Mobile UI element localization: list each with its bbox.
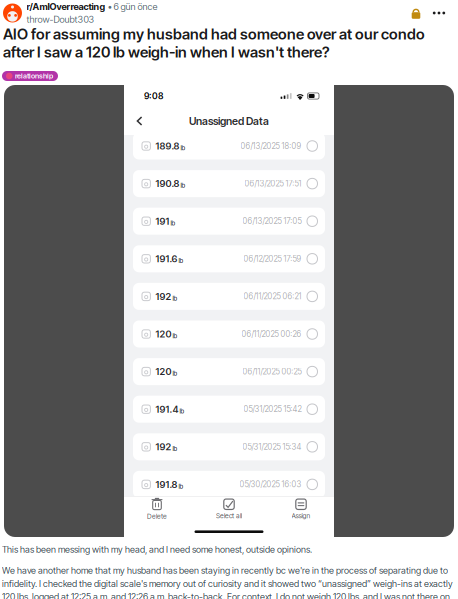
staticText: Assign [291, 512, 310, 520]
staticText: 06/13/2025 18:09 [240, 141, 301, 151]
staticText: We have another home that my husband has… [2, 565, 453, 599]
staticText: 05/30/2025 16:03 [239, 480, 301, 489]
staticText: 191.8 [155, 479, 177, 490]
staticText: lb [172, 294, 177, 302]
staticText: 190.8 [155, 178, 179, 189]
staticText: lb [172, 332, 177, 340]
staticText: 06/12/2025 17:59 [243, 254, 301, 264]
staticText: 191 [155, 215, 169, 227]
button[interactable]: 189.8 [133, 132, 325, 159]
button[interactable]: More options [429, 4, 449, 22]
staticText: 06/13/2025 17:05 [242, 216, 301, 226]
button[interactable]: 192 [133, 283, 325, 310]
staticText: • 6 gün önce [107, 1, 157, 12]
staticText: lb [170, 219, 175, 227]
button[interactable]: relationship [2, 71, 58, 81]
staticText: lb [172, 370, 177, 377]
staticText: AIO for assuming my husband had someone … [3, 25, 425, 61]
staticText: r/AmIOverreacting [26, 1, 105, 12]
button[interactable]: 190.8 [133, 170, 325, 197]
button[interactable]: 120 [133, 320, 325, 347]
staticText: throw-Doubt303 [26, 14, 94, 25]
staticText: 192 [155, 291, 171, 302]
button[interactable]: Select all [201, 498, 257, 520]
button[interactable]: 192 [133, 433, 325, 460]
staticText: Unassigned Data [189, 114, 269, 127]
staticText: 05/31/2025 15:34 [242, 442, 301, 452]
button[interactable]: Delete [129, 498, 185, 520]
button[interactable]: 191 [133, 208, 325, 235]
button[interactable]: 191.4 [133, 396, 325, 423]
staticText: 191.6 [155, 253, 177, 265]
staticText: lb [180, 144, 185, 152]
staticText: 191.4 [155, 403, 178, 415]
button[interactable]: 191.8 [133, 471, 325, 498]
staticText: 189.8 [155, 140, 179, 152]
staticText: 06/11/2025 00:25 [242, 367, 301, 376]
button[interactable]: Locked post [407, 4, 424, 22]
staticText: 06/11/2025 00:26 [241, 329, 301, 339]
button[interactable]: 120 [133, 358, 325, 385]
staticText: 06/13/2025 17:51 [244, 179, 301, 188]
button[interactable]: 191.6 [133, 245, 325, 272]
staticText: lb [172, 445, 177, 453]
staticText: relationship [15, 72, 53, 80]
staticText: lb [179, 407, 184, 415]
staticText: 120 [155, 328, 171, 340]
button[interactable]: Back [131, 111, 148, 131]
staticText: 120 [155, 366, 171, 377]
staticText: Delete [147, 512, 167, 520]
button[interactable]: Assign [273, 498, 329, 520]
staticText: This has been messing with my head, and … [2, 544, 312, 555]
staticText: 9:08 [144, 91, 163, 101]
staticText: Select all [216, 512, 242, 520]
staticText: lb [180, 182, 185, 189]
staticText: lb [178, 482, 183, 490]
staticText: 06/11/2025 06:21 [243, 292, 301, 301]
staticText: 192 [155, 441, 171, 453]
staticText: 05/31/2025 15:42 [243, 404, 301, 414]
staticText: lb [178, 257, 183, 265]
